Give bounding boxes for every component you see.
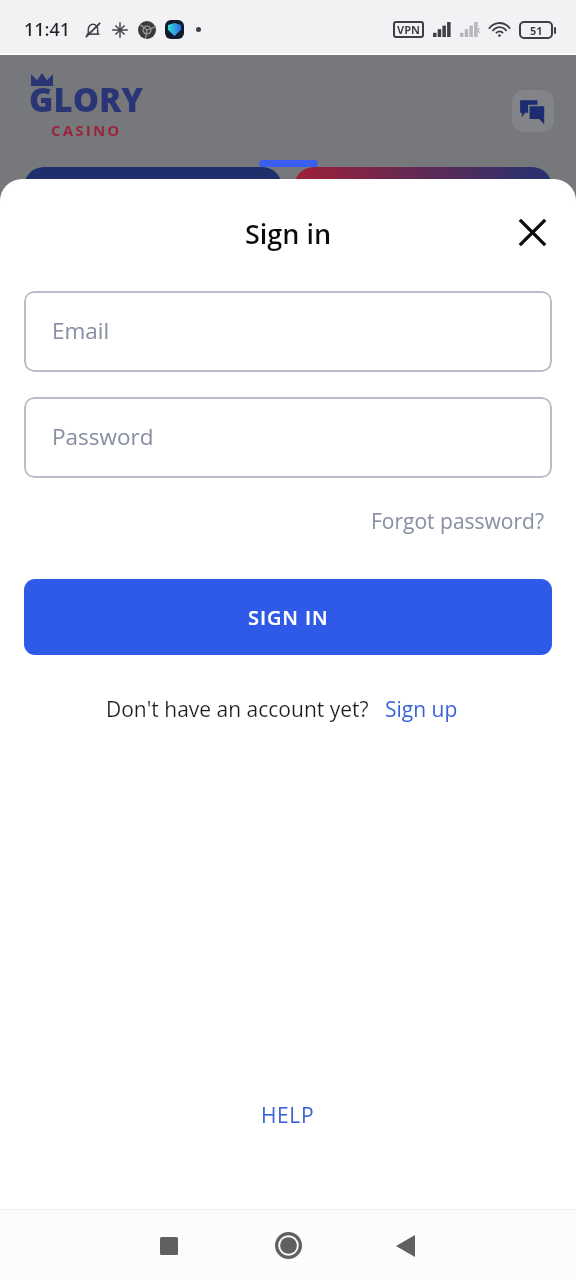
staticText: Don't have an account yet? [106,695,369,724]
staticText: Email [52,315,110,346]
button[interactable]: Recents [140,1217,197,1274]
staticText: GLORY [29,77,144,122]
button[interactable]: Home [260,1217,317,1274]
button[interactable]: Close [508,208,556,256]
button[interactable]: Email [24,291,552,372]
button[interactable]: SIGN IN [24,579,552,655]
staticText: VPN [397,22,420,37]
button[interactable]: Chat support [512,90,554,132]
staticText: CASINO [51,120,122,140]
staticText: Password [52,421,154,452]
button[interactable]: Sign up [385,695,458,724]
staticText: 51 [530,23,543,38]
staticText: HELP [261,1101,315,1130]
staticText: 11:41 [24,17,71,42]
button[interactable]: HELP [245,1093,331,1138]
staticText: SIGN IN [248,604,329,631]
button[interactable]: Forgot password? [359,501,556,542]
staticText: Forgot password? [371,507,544,536]
staticText: Sign in [245,215,332,252]
button[interactable]: Password [24,397,552,478]
button[interactable]: Back [377,1217,434,1274]
